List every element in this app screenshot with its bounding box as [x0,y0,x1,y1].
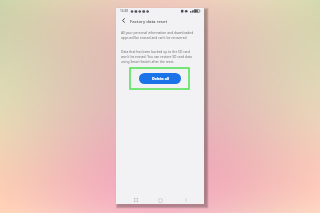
staticText: All your personal information and downlo… [121,30,195,40]
staticText: Data that has been backed up to the SD c… [121,49,195,64]
button[interactable]: Back [181,196,190,204]
button[interactable]: Recent apps [131,196,140,204]
button[interactable]: Home [156,196,165,204]
staticText: Factory data reset [130,18,168,24]
staticText: 14:30 [120,9,129,13]
staticText: Delete all [152,76,169,81]
button[interactable]: Back [119,16,128,25]
button[interactable]: Delete all [139,73,181,84]
